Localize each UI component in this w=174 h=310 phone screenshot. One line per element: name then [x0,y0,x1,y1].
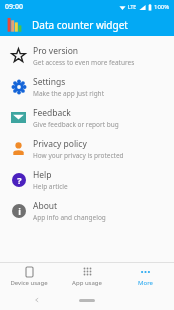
button[interactable]: App usage [58,263,116,290]
button[interactable]: Pro version [0,40,174,71]
button[interactable]: More [116,263,174,290]
button[interactable]: Privacy policy [0,133,174,164]
other: Device usage [26,267,33,277]
staticText: i [18,205,21,217]
staticText: About [33,200,58,212]
other: More [141,270,150,274]
staticText: 09:00 [5,2,23,12]
staticText: Pro version [33,45,79,57]
staticText: 100% [154,3,170,11]
staticText: Device usage [10,279,48,287]
button[interactable]: Device usage [0,263,58,290]
button[interactable]: i [0,195,174,226]
other: Back [34,297,40,303]
staticText: LTE [128,4,137,11]
staticText: Data counter widget [32,18,128,32]
button[interactable]: Feedback [0,102,174,133]
staticText: How your privacy is protected [33,151,124,160]
other: Home [79,299,95,302]
staticText: More [138,279,153,287]
staticText: App info and changelog [33,213,106,222]
button[interactable]: ? [0,164,174,195]
staticText: Give feedback or report bug [33,120,119,129]
button[interactable]: Settings [0,71,174,102]
staticText: Settings [33,76,66,88]
staticText: Privacy policy [33,138,87,150]
staticText: ? [17,174,22,186]
staticText: Help article [33,182,68,191]
other: App usage [83,267,92,276]
staticText: Make the app just right [33,89,104,98]
staticText: Feedback [33,107,71,119]
staticText: Get access to even more features [33,58,135,67]
staticText: App usage [72,279,102,287]
staticText: Help [33,169,52,181]
